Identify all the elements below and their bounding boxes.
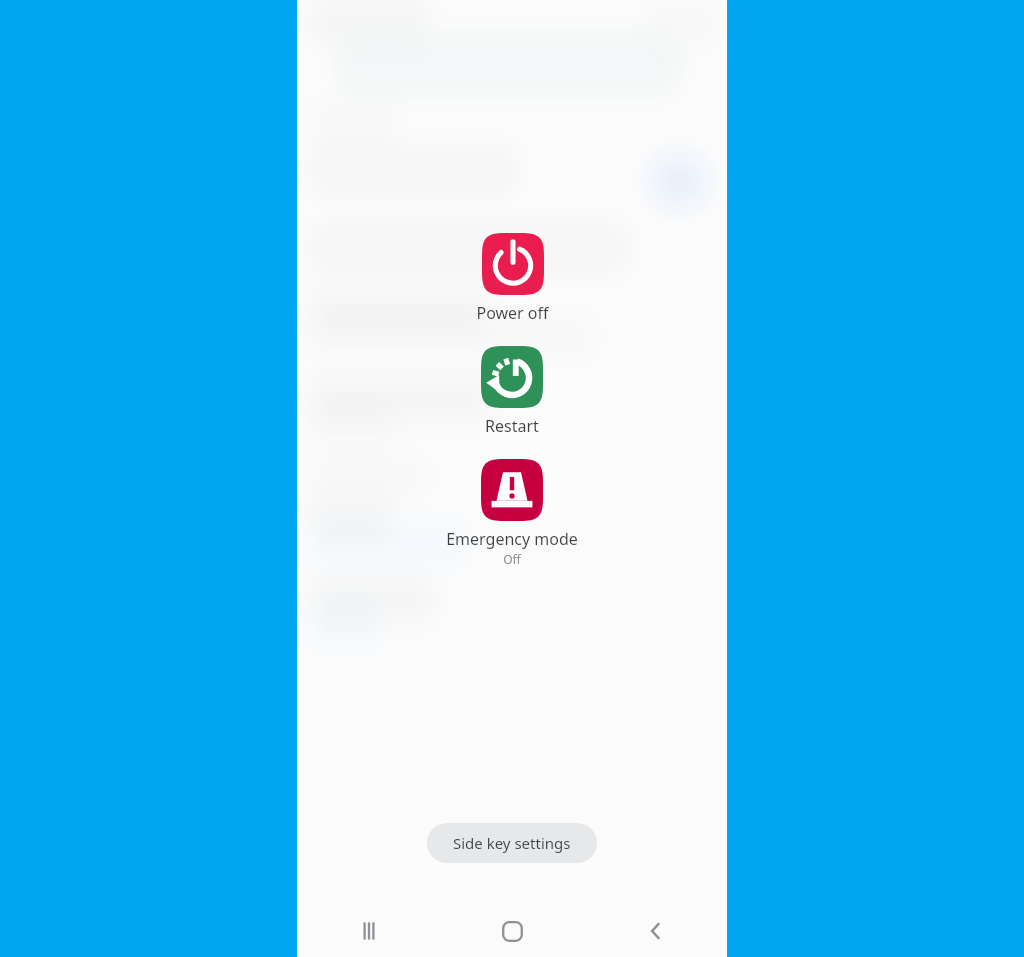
button[interactable]: Side key settings [427, 823, 597, 863]
button[interactable]: Home [441, 905, 584, 957]
button[interactable]: Recents [297, 905, 441, 957]
button[interactable]: Power off [460, 231, 565, 326]
button[interactable]: Restart [465, 344, 559, 439]
button[interactable]: Emergency mode [430, 457, 594, 569]
staticText: Emergency mode [446, 528, 578, 550]
button[interactable]: Back [584, 905, 727, 957]
staticText: Power off [476, 302, 549, 324]
staticText: Off [503, 551, 521, 567]
staticText: Restart [485, 415, 539, 437]
staticText: Side key settings [453, 833, 571, 853]
